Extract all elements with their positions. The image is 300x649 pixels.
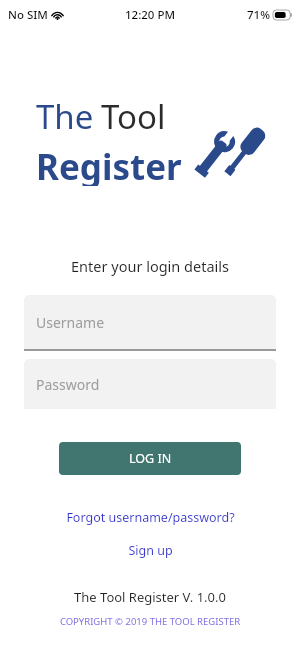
staticText: The Tool Register V. 1.0.0 <box>0 588 300 606</box>
staticText: COPYRIGHT © 2019 THE TOOL REGISTER <box>0 615 300 628</box>
staticText: Password <box>36 375 100 394</box>
staticText: Enter your login details <box>0 256 300 276</box>
button[interactable]: Username <box>24 295 276 349</box>
staticText: Sign up <box>128 542 173 559</box>
button[interactable]: LOG IN <box>59 442 241 475</box>
staticText: Register <box>36 143 182 186</box>
button[interactable]: Password <box>24 359 276 409</box>
staticText: 71% <box>247 7 270 23</box>
staticText: LOG IN <box>129 450 172 467</box>
staticText: No SIM <box>8 7 48 23</box>
staticText: Tool <box>101 94 166 139</box>
staticText: The <box>36 94 94 139</box>
staticText: 12:20 PM <box>125 7 176 23</box>
staticText: Forgot username/password? <box>66 509 235 526</box>
button[interactable]: Forgot username/password? <box>62 508 239 527</box>
staticText: Username <box>36 313 105 332</box>
button[interactable]: Sign up <box>124 541 177 560</box>
